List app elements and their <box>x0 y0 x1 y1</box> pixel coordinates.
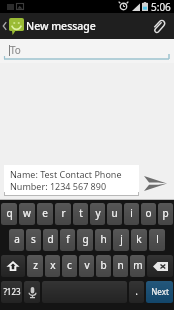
staticText: Number: 1234 567 890 <box>10 180 107 192</box>
button[interactable]: m <box>130 255 145 277</box>
staticText: f <box>66 232 70 246</box>
button[interactable]: b <box>96 255 111 277</box>
staticText: n <box>117 258 124 272</box>
button[interactable]: q <box>1 203 17 225</box>
button[interactable]: t <box>73 203 88 225</box>
button[interactable]: u <box>107 203 122 225</box>
button[interactable]: w <box>19 203 35 225</box>
button[interactable]: r <box>55 203 71 225</box>
staticText: a <box>14 232 20 246</box>
button[interactable] <box>42 281 127 303</box>
staticText: d <box>47 232 54 246</box>
button[interactable]: Navigate up <box>0 13 24 39</box>
button[interactable]: e <box>37 203 53 225</box>
button[interactable]: Backspace <box>147 255 173 277</box>
button[interactable]: c <box>62 255 77 277</box>
staticText: s <box>31 232 36 246</box>
staticText: 5:06 <box>151 0 171 13</box>
button[interactable]: x <box>45 255 60 277</box>
button[interactable]: l <box>149 229 165 251</box>
staticText: b <box>100 258 107 272</box>
staticText: g <box>82 232 89 246</box>
staticText: e <box>42 206 48 220</box>
staticText: ?123 <box>3 286 21 297</box>
staticText: q <box>6 206 13 220</box>
staticText: r <box>61 206 66 220</box>
staticText: i <box>130 206 133 220</box>
button[interactable]: d <box>43 229 58 251</box>
staticText: To <box>10 43 21 57</box>
staticText: k <box>136 232 142 246</box>
button[interactable]: ?123 <box>1 281 22 303</box>
button[interactable]: a <box>9 229 24 251</box>
button[interactable]: g <box>77 229 93 251</box>
staticText: l <box>156 232 159 246</box>
button[interactable]: k <box>131 229 147 251</box>
button[interactable]: y <box>90 203 105 225</box>
staticText: x <box>50 258 56 272</box>
button[interactable]: Name: Test Contact Phone <box>4 165 139 196</box>
button[interactable]: Shift <box>1 255 25 277</box>
staticText: New message <box>26 19 96 33</box>
staticText: m <box>133 258 143 272</box>
button[interactable]: Voice input <box>24 281 40 303</box>
staticText: p <box>162 206 169 220</box>
button[interactable]: o <box>141 203 156 225</box>
staticText: w <box>23 206 31 220</box>
button[interactable]: . <box>129 281 144 303</box>
button[interactable]: j <box>113 229 129 251</box>
staticText: . <box>135 284 138 298</box>
staticText: y <box>95 206 101 220</box>
button[interactable]: z <box>27 255 43 277</box>
button[interactable]: h <box>95 229 111 251</box>
button[interactable]: p <box>158 203 173 225</box>
staticText: c <box>67 258 72 272</box>
staticText: h <box>100 232 107 246</box>
staticText: v <box>84 258 90 272</box>
staticText: t <box>79 206 83 220</box>
button[interactable]: Attach <box>142 13 174 39</box>
staticText: Name: Test Contact Phone <box>10 168 122 180</box>
staticText: z <box>33 258 38 272</box>
button[interactable]: Next <box>146 281 173 303</box>
button[interactable]: Send <box>139 166 173 196</box>
staticText: Next <box>151 286 169 297</box>
button[interactable]: i <box>124 203 139 225</box>
button[interactable]: f <box>60 229 75 251</box>
button[interactable]: To <box>0 39 174 63</box>
staticText: j <box>120 232 123 246</box>
staticText: u <box>111 206 118 220</box>
button[interactable]: v <box>79 255 94 277</box>
button[interactable]: n <box>113 255 128 277</box>
button[interactable]: s <box>26 229 41 251</box>
staticText: o <box>145 206 152 220</box>
